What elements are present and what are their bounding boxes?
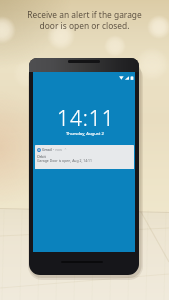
staticText: Garage Door is open, Aug 2, 14:11 [37,158,93,163]
staticText: Receive an alert if the garage door is o… [27,9,142,31]
button[interactable]: Gmail [35,145,134,169]
staticText: Thursday, August 2 [66,131,104,137]
staticText: Orbit [37,154,46,159]
staticText: • now ⌃ [52,147,67,152]
staticText: 14:11 [57,104,115,133]
staticText: Gmail [42,147,52,152]
